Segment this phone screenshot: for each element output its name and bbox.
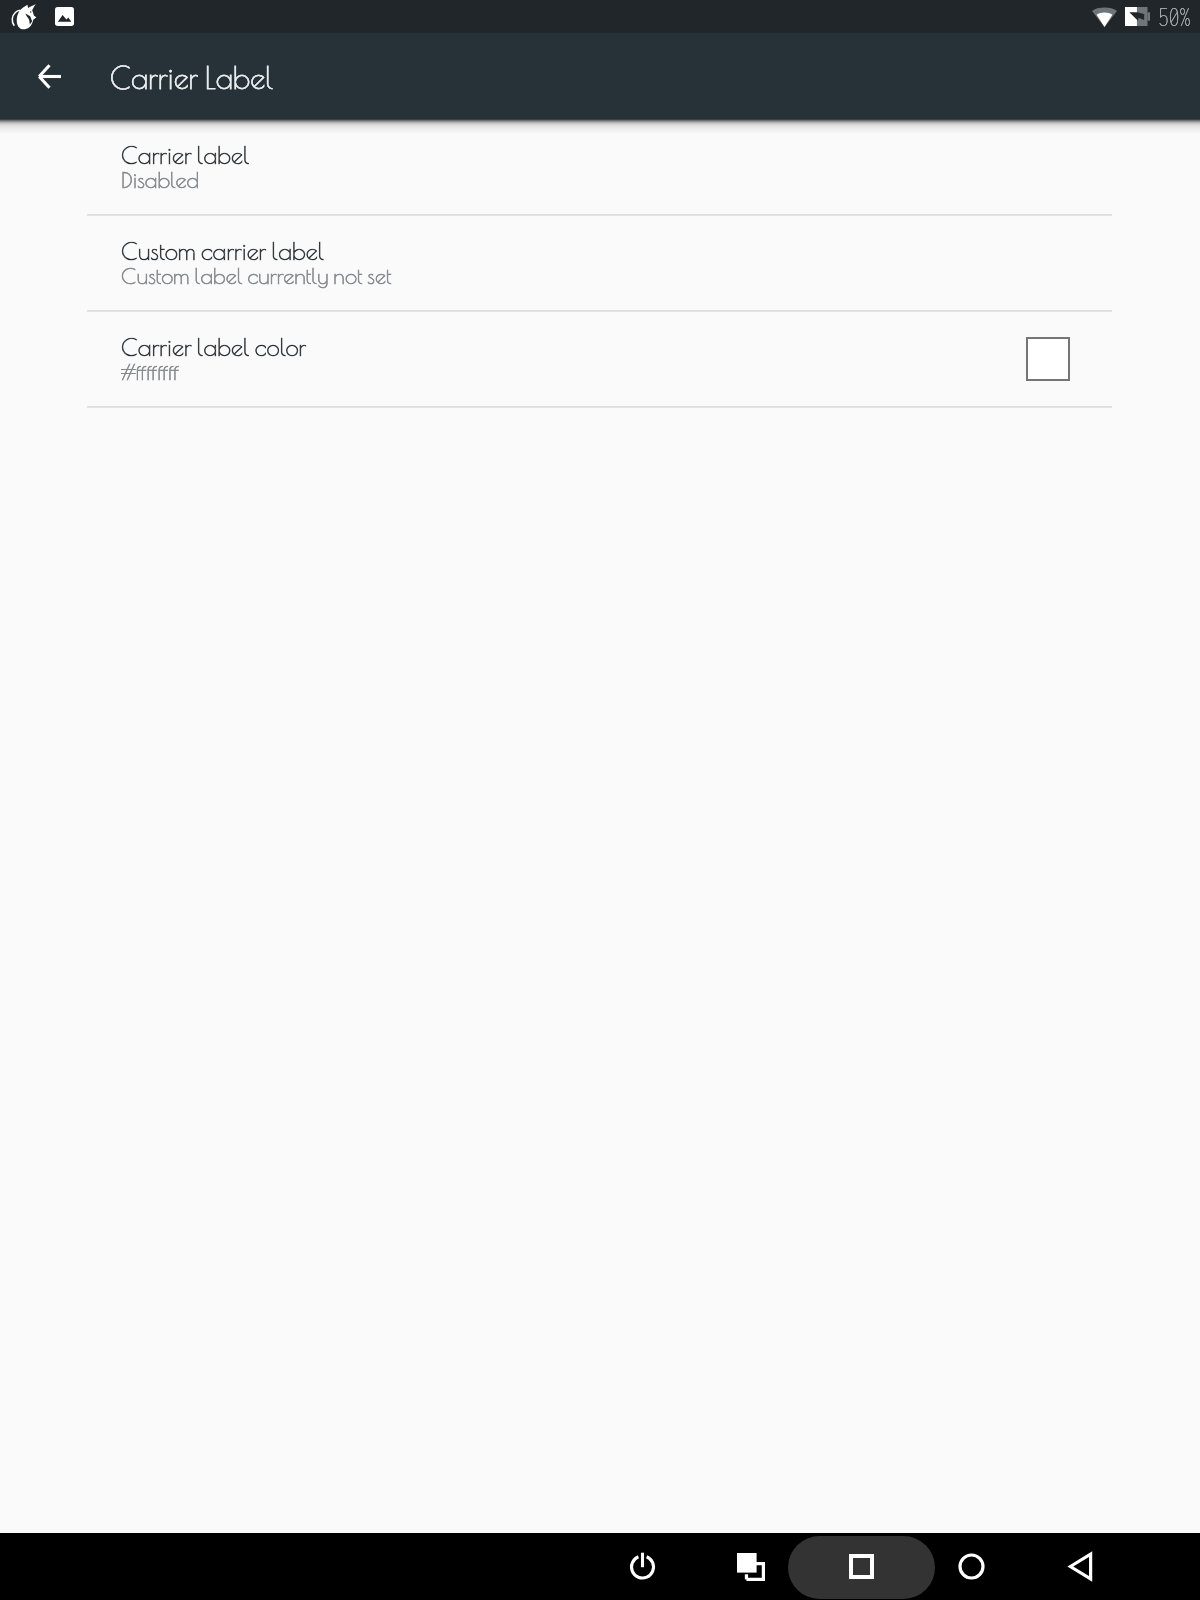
button[interactable]: Home <box>938 1533 1004 1600</box>
button[interactable]: Recents <box>828 1533 894 1600</box>
button[interactable]: Back <box>1047 1533 1113 1600</box>
staticText: #ffffffff <box>121 359 180 385</box>
button[interactable]: Custom carrier label <box>0 215 1200 311</box>
staticText: Carrier label color <box>121 333 307 361</box>
staticText: Carrier Label <box>110 60 274 95</box>
staticText: 50% <box>1158 3 1191 31</box>
button[interactable]: Power <box>609 1533 675 1600</box>
staticText: Carrier label <box>121 141 250 169</box>
staticText: Carrier Label <box>110 60 274 95</box>
button[interactable]: Carrier label color <box>0 311 1200 407</box>
staticText: Carrier label <box>121 141 250 169</box>
staticText: Custom carrier label <box>121 237 325 265</box>
staticText: Carrier label color <box>121 333 307 361</box>
staticText: Disabled <box>121 167 200 193</box>
staticText: #ffffffff <box>121 359 180 385</box>
button[interactable]: Carrier label <box>0 119 1200 215</box>
staticText: Custom label currently not set <box>121 263 392 289</box>
staticText: Disabled <box>121 167 200 193</box>
button[interactable]: Navigate up <box>25 52 73 100</box>
staticText: Custom carrier label <box>121 237 325 265</box>
button[interactable]: Split screen <box>718 1533 784 1600</box>
staticText: Custom label currently not set <box>121 263 392 289</box>
